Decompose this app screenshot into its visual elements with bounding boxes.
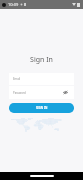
button[interactable]: Email (9, 73, 74, 85)
staticText: Sign In (0, 55, 83, 65)
button[interactable]: SIGN IN (9, 103, 74, 113)
button[interactable]: Password (9, 86, 74, 99)
staticText: Password (13, 91, 26, 95)
button[interactable]: Show password (62, 89, 69, 96)
staticText: SIGN IN (36, 106, 48, 110)
staticText: 10:09 (8, 2, 19, 7)
staticText: Email (13, 77, 21, 81)
